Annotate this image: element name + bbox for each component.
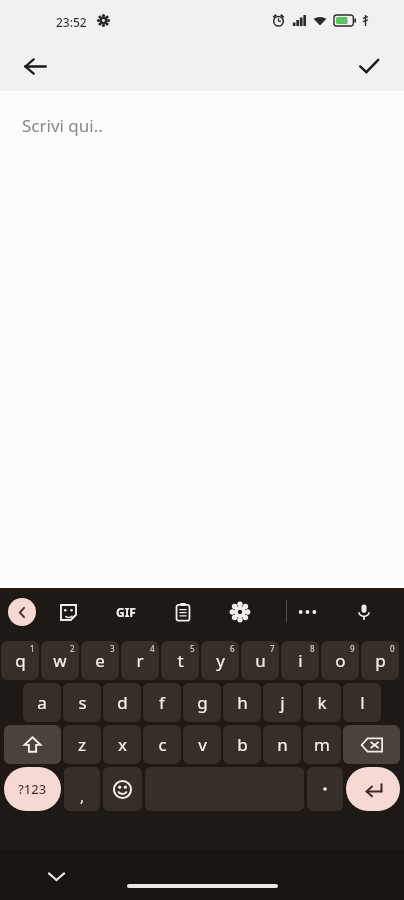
button[interactable]: t	[161, 641, 199, 680]
staticText: y	[216, 649, 225, 672]
staticText: 0	[390, 643, 395, 654]
staticText: c	[158, 733, 167, 756]
staticText: m	[314, 733, 330, 756]
button[interactable]: p	[361, 641, 399, 680]
button[interactable]: Keyboard tool	[167, 596, 199, 628]
button[interactable]: l	[343, 683, 381, 722]
staticText: q	[15, 649, 26, 672]
staticText: s	[78, 691, 87, 714]
button[interactable]: Keyboard tool	[110, 596, 142, 628]
button[interactable]: u	[241, 641, 279, 680]
button[interactable]: o	[321, 641, 359, 680]
button[interactable]: Period	[307, 767, 343, 811]
button[interactable]: Save	[346, 43, 392, 89]
button[interactable]: n	[263, 725, 301, 764]
button[interactable]: w	[41, 641, 79, 680]
staticText: n	[277, 733, 288, 756]
button[interactable]: ?123	[4, 767, 61, 811]
staticText: 6	[230, 643, 235, 654]
staticText: j	[280, 691, 285, 714]
button[interactable]: Hide keyboard	[38, 858, 74, 894]
button[interactable]: b	[223, 725, 261, 764]
button[interactable]: m	[303, 725, 341, 764]
button[interactable]: Comma	[64, 767, 100, 811]
button[interactable]: Emoji	[103, 767, 142, 811]
button[interactable]: s	[63, 683, 101, 722]
button[interactable]: j	[263, 683, 301, 722]
button[interactable]: v	[183, 725, 221, 764]
button[interactable]: c	[143, 725, 181, 764]
button[interactable]: f	[143, 683, 181, 722]
button[interactable]: e	[81, 641, 119, 680]
button[interactable]: z	[63, 725, 101, 764]
button[interactable]: Keyboard tool	[52, 596, 84, 628]
button[interactable]: g	[183, 683, 221, 722]
button[interactable]: x	[103, 725, 141, 764]
button[interactable]: Keyboard tool	[348, 596, 380, 628]
staticText: b	[237, 733, 248, 756]
button[interactable]: h	[223, 683, 261, 722]
button[interactable]: Back	[12, 43, 58, 89]
staticText: x	[118, 733, 127, 756]
staticText: a	[37, 691, 47, 714]
staticText: g	[197, 691, 208, 714]
staticText: 23:52	[56, 14, 87, 30]
button[interactable]: k	[303, 683, 341, 722]
button[interactable]: Back	[8, 598, 36, 626]
staticText: u	[255, 649, 266, 672]
staticText: 2	[70, 643, 75, 654]
button[interactable]: a	[23, 683, 61, 722]
staticText: 1	[30, 643, 35, 654]
button[interactable]: Shift	[4, 725, 61, 764]
staticText: o	[335, 649, 346, 672]
staticText: t	[177, 649, 184, 672]
staticText: ?123	[18, 780, 47, 798]
staticText: h	[237, 691, 248, 714]
staticText: r	[136, 649, 144, 672]
staticText: i	[298, 649, 303, 672]
staticText: v	[198, 733, 207, 756]
button[interactable]: d	[103, 683, 141, 722]
staticText: z	[78, 733, 86, 756]
button[interactable]: Keyboard tool	[224, 596, 256, 628]
staticText: 7	[270, 643, 275, 654]
staticText: k	[317, 691, 327, 714]
staticText: d	[117, 691, 128, 714]
button[interactable]: Enter	[346, 767, 400, 811]
button[interactable]: i	[281, 641, 319, 680]
button[interactable]: r	[121, 641, 159, 680]
staticText: e	[95, 649, 105, 672]
staticText: 4	[150, 643, 155, 654]
staticText: 5	[190, 643, 195, 654]
staticText: 3	[110, 643, 115, 654]
staticText: 9	[350, 643, 355, 654]
staticText: GIF	[116, 604, 136, 620]
staticText: f	[159, 691, 165, 714]
staticText: w	[53, 649, 67, 672]
staticText: ,	[80, 786, 85, 806]
button[interactable]: Backspace	[343, 725, 400, 764]
staticText: l	[360, 691, 365, 714]
button[interactable]: Keyboard tool	[291, 596, 323, 628]
button[interactable]: y	[201, 641, 239, 680]
button[interactable]: q	[1, 641, 39, 680]
staticText: Scrivi qui..	[22, 114, 103, 137]
staticText: p	[375, 649, 386, 672]
staticText: 8	[310, 643, 315, 654]
